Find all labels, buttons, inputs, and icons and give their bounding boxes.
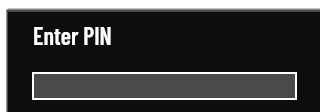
staticText: Enter PIN bbox=[33, 21, 112, 50]
